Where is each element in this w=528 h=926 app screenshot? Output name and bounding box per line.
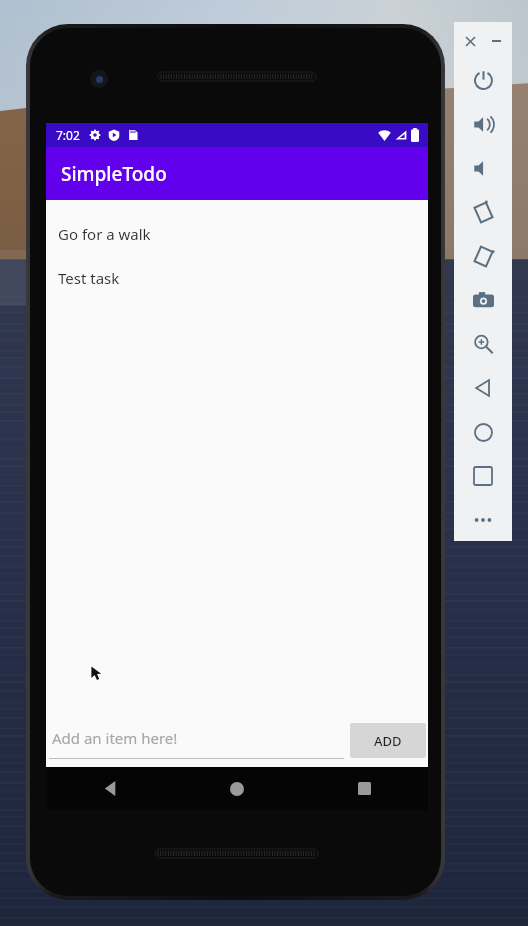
button[interactable]: Screenshot [454,278,512,322]
button[interactable]: Overview [454,454,512,498]
button[interactable]: Close [461,32,479,50]
button[interactable]: Test task [46,256,428,300]
button[interactable]: Minimize [487,32,505,50]
button[interactable]: Back [87,767,133,810]
staticText: 7:02 [56,127,80,143]
button[interactable]: Volume up [454,102,512,146]
button[interactable]: ADD [350,723,426,758]
button[interactable]: Volume down [454,146,512,190]
button[interactable]: Back [454,366,512,410]
button[interactable]: Rotate left [454,190,512,234]
button[interactable]: Home [214,767,260,810]
button[interactable]: Home [454,410,512,454]
button[interactable]: Rotate right [454,234,512,278]
staticText: SimpleTodo [61,161,167,187]
staticText: Test task [58,268,120,288]
staticText: ADD [374,732,402,750]
button[interactable]: Power [454,58,512,102]
button[interactable]: More [454,498,512,541]
button[interactable]: Recent apps [341,767,387,810]
button[interactable]: Go for a walk [46,212,428,256]
button[interactable]: Add an item here! [49,721,344,759]
staticText: Add an item here! [52,728,178,748]
button[interactable]: Zoom [454,322,512,366]
staticText: Go for a walk [58,224,151,244]
